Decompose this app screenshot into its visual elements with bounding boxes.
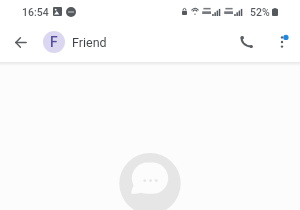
staticText: F [50,34,58,50]
staticText: 16:54 [22,6,49,18]
button[interactable]: More options [267,27,297,57]
button[interactable]: F [43,31,65,53]
staticText: 52% [250,6,270,18]
button[interactable]: Back [4,26,37,59]
button[interactable]: Call [229,25,263,59]
staticText: Friend [72,35,107,50]
